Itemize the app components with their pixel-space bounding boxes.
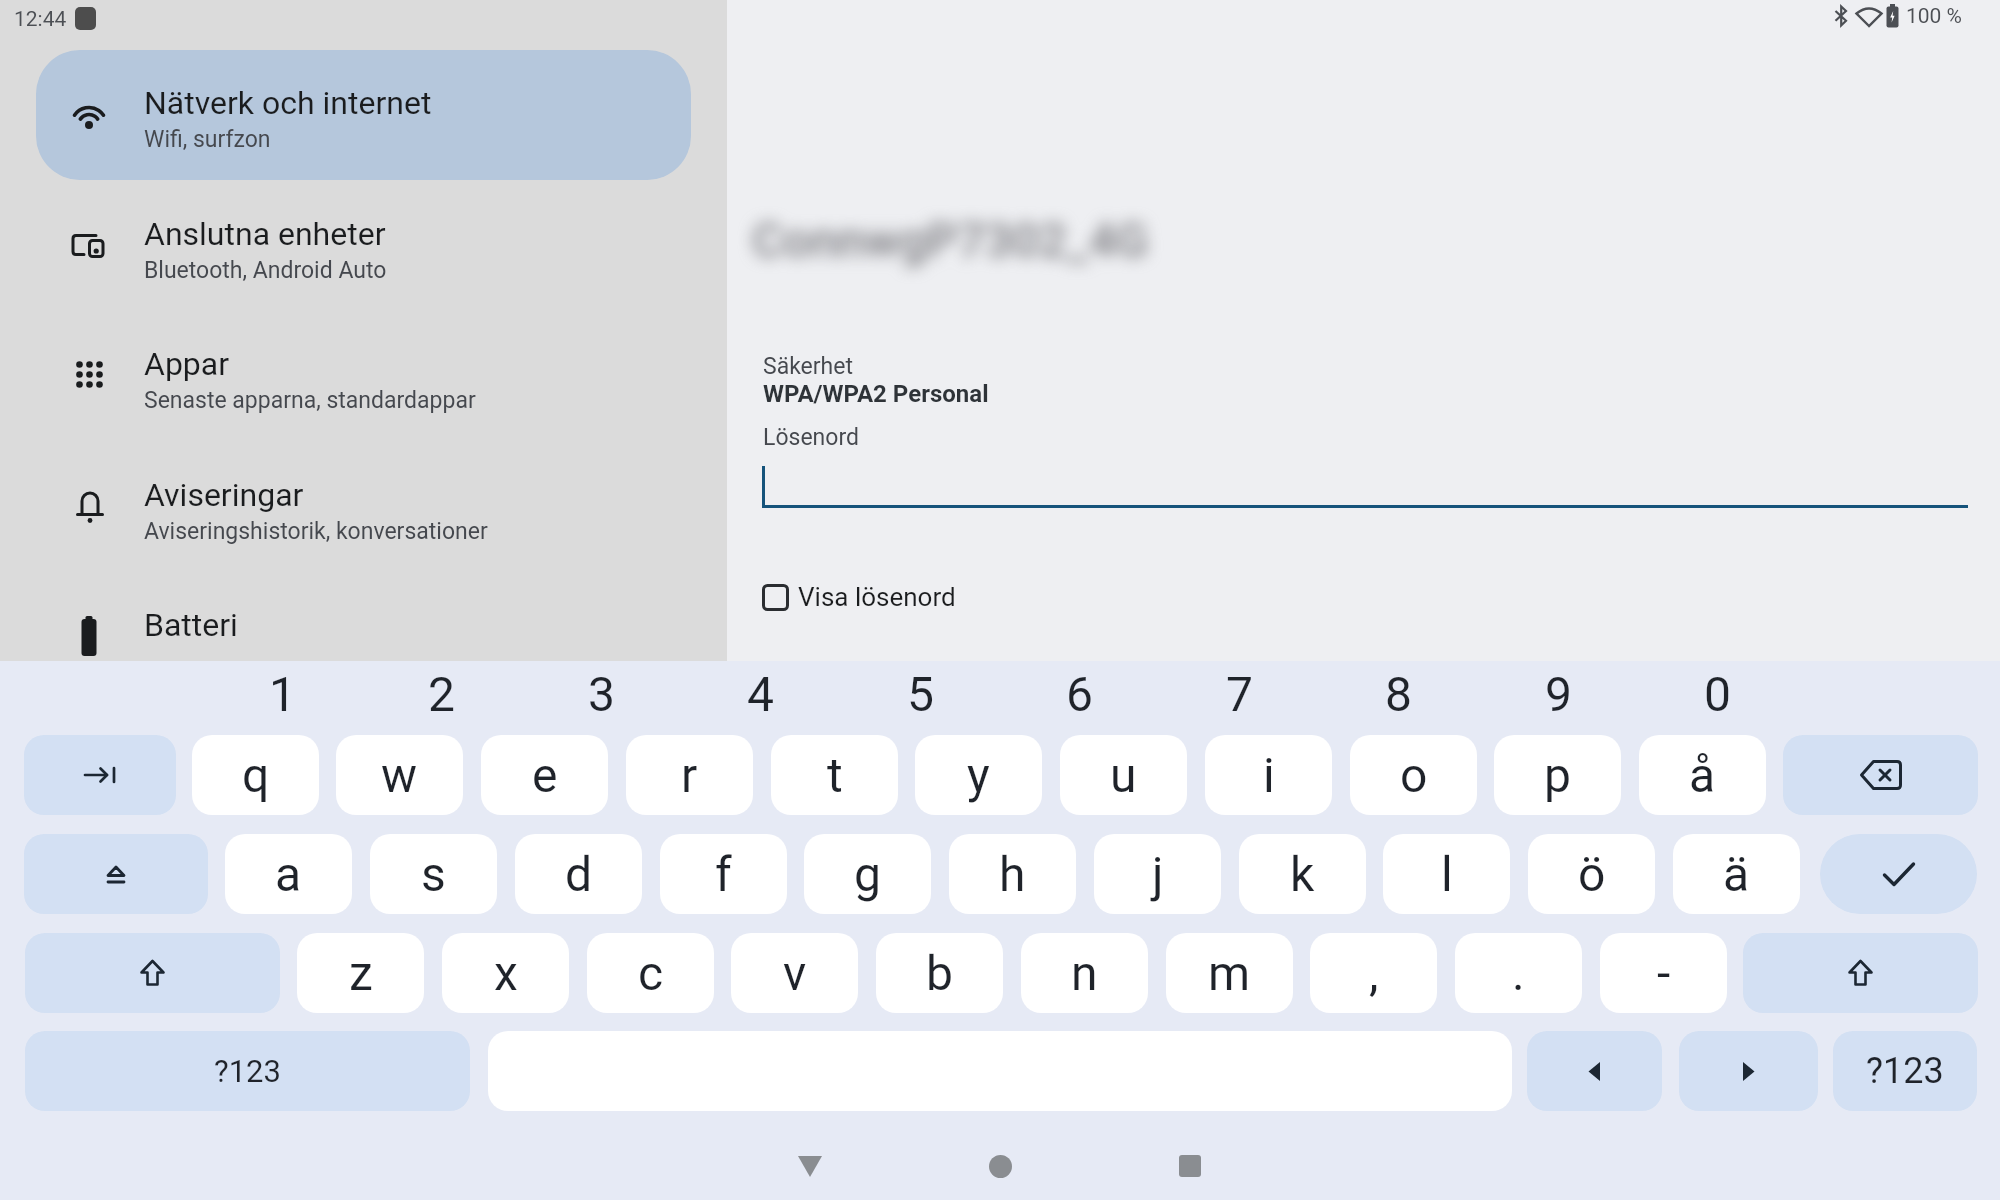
- staticText: 8: [1385, 666, 1412, 716]
- button[interactable]: z: [297, 933, 424, 1013]
- button[interactable]: 6: [1019, 666, 1139, 716]
- button[interactable]: Visa lösenord: [752, 572, 1012, 622]
- button[interactable]: [25, 435, 715, 559]
- staticText: 6: [1066, 666, 1093, 716]
- button[interactable]: w: [336, 735, 463, 815]
- button[interactable]: 9: [1498, 666, 1618, 716]
- button[interactable]: [1743, 933, 1978, 1013]
- button[interactable]: 2: [381, 666, 501, 716]
- button[interactable]: [25, 933, 280, 1013]
- button[interactable]: [25, 565, 715, 689]
- button[interactable]: 8: [1338, 666, 1458, 716]
- button[interactable]: c: [587, 933, 714, 1013]
- staticText: i: [1263, 747, 1275, 803]
- button[interactable]: [25, 174, 715, 298]
- button[interactable]: d: [515, 834, 642, 914]
- button[interactable]: r: [626, 735, 753, 815]
- button[interactable]: [1527, 1031, 1662, 1111]
- staticText: e: [532, 747, 558, 803]
- button[interactable]: a: [225, 834, 352, 914]
- staticText: Senaste apparna, standardappar: [144, 387, 476, 414]
- button[interactable]: [25, 304, 715, 428]
- button[interactable]: 7: [1179, 666, 1299, 716]
- button[interactable]: y: [915, 735, 1042, 815]
- button[interactable]: [1820, 834, 1977, 914]
- button[interactable]: h: [949, 834, 1076, 914]
- staticText: p: [1544, 747, 1571, 803]
- staticText: 5: [907, 666, 934, 716]
- button[interactable]: [36, 50, 691, 180]
- button[interactable]: o: [1350, 735, 1477, 815]
- button[interactable]: t: [771, 735, 898, 815]
- staticText: d: [565, 846, 593, 902]
- staticText: Appar: [144, 345, 230, 383]
- button[interactable]: [1679, 1031, 1818, 1111]
- button[interactable]: ö: [1528, 834, 1655, 914]
- button[interactable]: 1: [222, 666, 342, 716]
- staticText: s: [421, 846, 446, 902]
- button[interactable]: [1783, 735, 1978, 815]
- staticText: Nätverk och internet: [144, 84, 432, 122]
- button[interactable]: q: [192, 735, 319, 815]
- button[interactable]: n: [1021, 933, 1148, 1013]
- staticText: q: [242, 747, 270, 803]
- staticText: Visa lösenord: [798, 582, 956, 612]
- button[interactable]: v: [731, 933, 858, 1013]
- button[interactable]: f: [660, 834, 787, 914]
- staticText: ,: [1369, 945, 1379, 1001]
- staticText: Aviseringshistorik, konversationer: [144, 518, 488, 545]
- button[interactable]: p: [1494, 735, 1621, 815]
- staticText: n: [1071, 945, 1098, 1001]
- staticText: Lösenord: [763, 424, 859, 451]
- button[interactable]: [1164, 1144, 1216, 1188]
- staticText: 12:44: [14, 7, 67, 32]
- button[interactable]: s: [370, 834, 497, 914]
- button[interactable]: [784, 1144, 836, 1188]
- staticText: y: [967, 747, 990, 803]
- button[interactable]: 5: [860, 666, 980, 716]
- staticText: 7: [1226, 666, 1253, 716]
- staticText: v: [783, 945, 807, 1001]
- staticText: w: [381, 747, 418, 803]
- button[interactable]: 4: [700, 666, 820, 716]
- button[interactable]: j: [1094, 834, 1221, 914]
- staticText: m: [1208, 945, 1251, 1001]
- button[interactable]: k: [1239, 834, 1366, 914]
- staticText: x: [494, 945, 518, 1001]
- button[interactable]: [24, 735, 176, 815]
- button[interactable]: m: [1166, 933, 1293, 1013]
- button[interactable]: u: [1060, 735, 1187, 815]
- button[interactable]: x: [442, 933, 569, 1013]
- button[interactable]: l: [1383, 834, 1510, 914]
- staticText: j: [1152, 846, 1164, 902]
- staticText: 2: [428, 666, 455, 716]
- button[interactable]: [25, 43, 715, 167]
- staticText: z: [349, 945, 373, 1001]
- staticText: 1: [269, 666, 296, 716]
- button[interactable]: [24, 834, 208, 914]
- staticText: k: [1290, 846, 1315, 902]
- staticText: Batteri: [144, 606, 238, 644]
- button[interactable]: .: [1455, 933, 1582, 1013]
- button[interactable]: -: [1600, 933, 1727, 1013]
- staticText: WPA/WPA2 Personal: [763, 380, 989, 408]
- staticText: ?123: [214, 1053, 281, 1089]
- staticText: b: [926, 945, 953, 1001]
- button[interactable]: g: [804, 834, 931, 914]
- button[interactable]: 3: [541, 666, 661, 716]
- staticText: ConnwgP7302_4G: [752, 212, 1149, 268]
- button[interactable]: [974, 1144, 1026, 1188]
- button[interactable]: ,: [1310, 933, 1437, 1013]
- button[interactable]: ?123: [1833, 1031, 1977, 1111]
- button[interactable]: ?123: [25, 1031, 470, 1111]
- button[interactable]: ä: [1673, 834, 1800, 914]
- staticText: .: [1512, 945, 1525, 1001]
- button[interactable]: b: [876, 933, 1003, 1013]
- staticText: Säkerhet: [763, 353, 853, 380]
- button[interactable]: 0: [1657, 666, 1777, 716]
- button[interactable]: å: [1639, 735, 1766, 815]
- button[interactable]: e: [481, 735, 608, 815]
- button[interactable]: i: [1205, 735, 1332, 815]
